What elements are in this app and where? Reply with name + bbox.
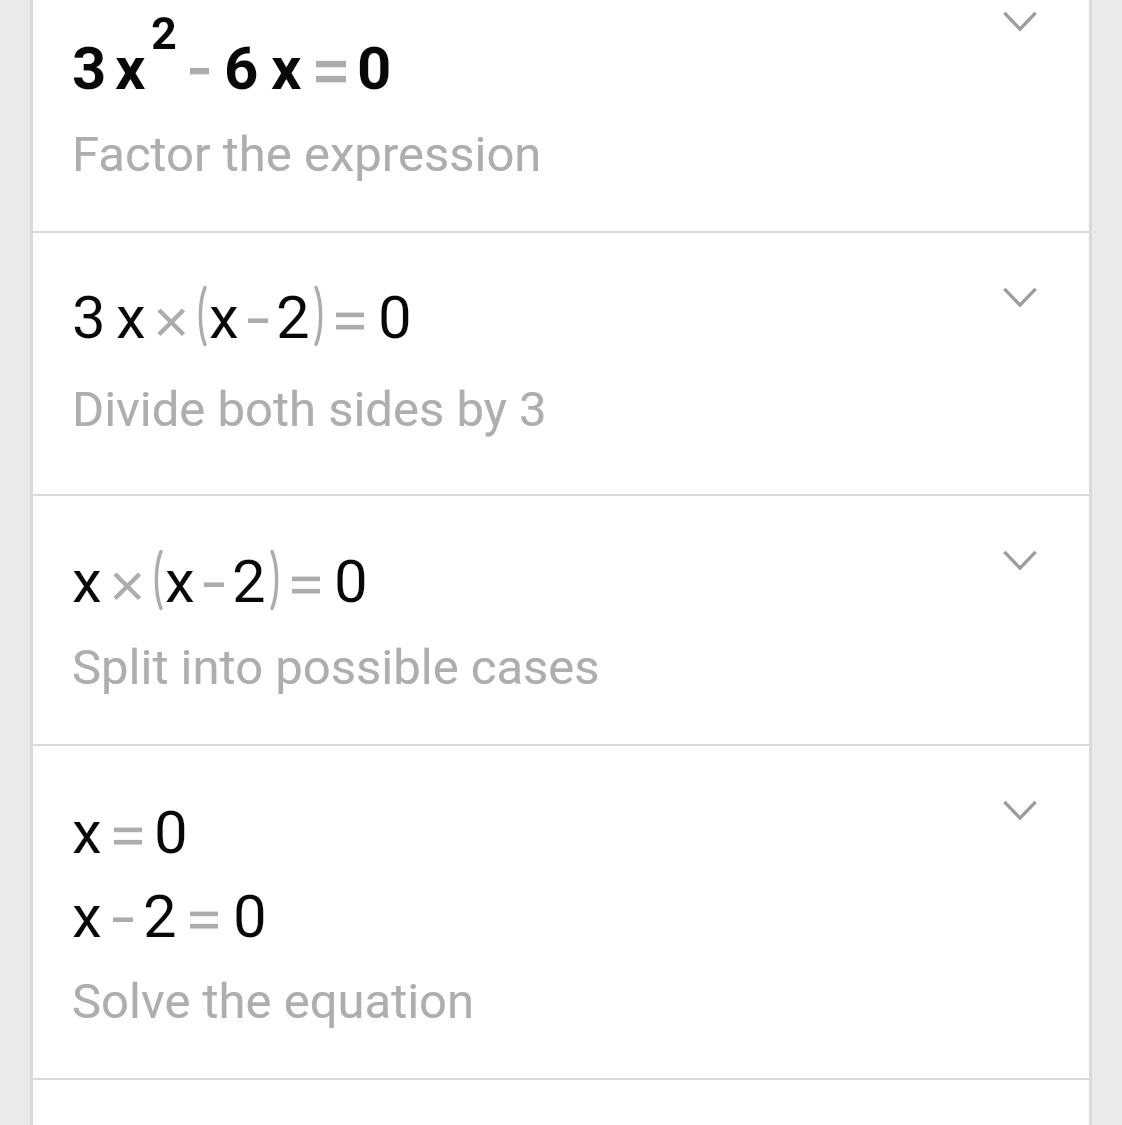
staticText: 2 <box>151 7 177 60</box>
staticText: 0 <box>378 282 412 352</box>
staticText: 0 <box>334 546 368 616</box>
staticText: Split into possible cases <box>72 639 600 696</box>
button[interactable]: x <box>33 496 1089 744</box>
button[interactable]: 3 <box>33 0 1089 231</box>
staticText: 2 <box>232 546 266 616</box>
button[interactable]: Expand step <box>996 0 1044 45</box>
staticText: x <box>209 282 239 352</box>
staticText: 0 <box>154 797 188 867</box>
staticText: 6 <box>224 33 259 103</box>
staticText: 2 <box>143 881 177 951</box>
button[interactable]: 3 <box>33 233 1089 494</box>
staticText: Factor the expression <box>72 126 542 183</box>
staticText: 3 <box>72 282 106 352</box>
staticText: 2 <box>276 282 310 352</box>
staticText: x <box>116 282 146 352</box>
staticText: 3 <box>72 33 107 103</box>
button[interactable]: Expand step <box>996 536 1044 584</box>
staticText: 0 <box>357 33 392 103</box>
staticText: x <box>72 881 102 951</box>
staticText: x <box>115 33 146 103</box>
staticText: x <box>72 546 102 616</box>
staticText: Solve the equation <box>72 973 475 1030</box>
button[interactable]: Expand step <box>996 786 1044 834</box>
staticText: x <box>165 546 195 616</box>
staticText: 0 <box>233 881 267 951</box>
staticText: x <box>72 797 102 867</box>
staticText: x <box>271 33 302 103</box>
button[interactable]: x <box>33 746 1089 1078</box>
button[interactable]: Expand step <box>996 273 1044 321</box>
staticText: Divide both sides by 3 <box>72 381 547 438</box>
